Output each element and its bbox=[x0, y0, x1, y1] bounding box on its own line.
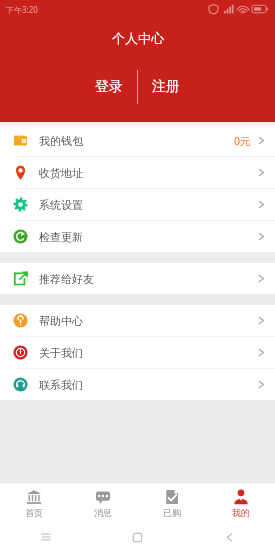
staticText: 联系我们 bbox=[39, 378, 83, 392]
button[interactable]: 我的钱包 bbox=[0, 125, 275, 156]
button[interactable]: 帮助中心 bbox=[0, 305, 275, 336]
staticText: 登录 bbox=[95, 78, 123, 96]
button[interactable]: 首页 bbox=[0, 482, 68, 524]
button[interactable]: 收货地址 bbox=[0, 157, 275, 188]
staticText: 首页 bbox=[25, 507, 43, 518]
button[interactable]: 联系我们 bbox=[0, 369, 275, 400]
button[interactable]: 注册 bbox=[138, 72, 194, 102]
staticText: 我的钱包 bbox=[39, 134, 83, 148]
staticText: 我的 bbox=[232, 507, 250, 518]
staticText: 系统设置 bbox=[39, 198, 83, 212]
button[interactable]: 关于我们 bbox=[0, 337, 275, 368]
staticText: 收货地址 bbox=[39, 166, 83, 180]
button[interactable]: 已购 bbox=[137, 482, 206, 524]
staticText: 推荐给好友 bbox=[39, 272, 94, 286]
button[interactable]: Back bbox=[183, 524, 275, 550]
button[interactable]: Recent apps bbox=[0, 524, 91, 550]
button[interactable]: 系统设置 bbox=[0, 189, 275, 220]
staticText: 检查更新 bbox=[39, 230, 83, 244]
staticText: 消息 bbox=[94, 507, 112, 518]
staticText: 注册 bbox=[152, 78, 180, 96]
button[interactable]: 消息 bbox=[68, 482, 137, 524]
staticText: 下午3:20 bbox=[6, 4, 38, 15]
button[interactable]: 检查更新 bbox=[0, 221, 275, 252]
staticText: 帮助中心 bbox=[39, 314, 83, 328]
button[interactable]: 我的 bbox=[206, 482, 275, 524]
button[interactable]: 推荐给好友 bbox=[0, 263, 275, 294]
staticText: 已购 bbox=[163, 507, 181, 518]
staticText: 个人中心 bbox=[112, 30, 164, 46]
button[interactable]: Home bbox=[91, 524, 183, 550]
button[interactable]: 登录 bbox=[81, 72, 137, 102]
staticText: 关于我们 bbox=[39, 346, 83, 360]
staticText: 0元 bbox=[234, 134, 251, 148]
